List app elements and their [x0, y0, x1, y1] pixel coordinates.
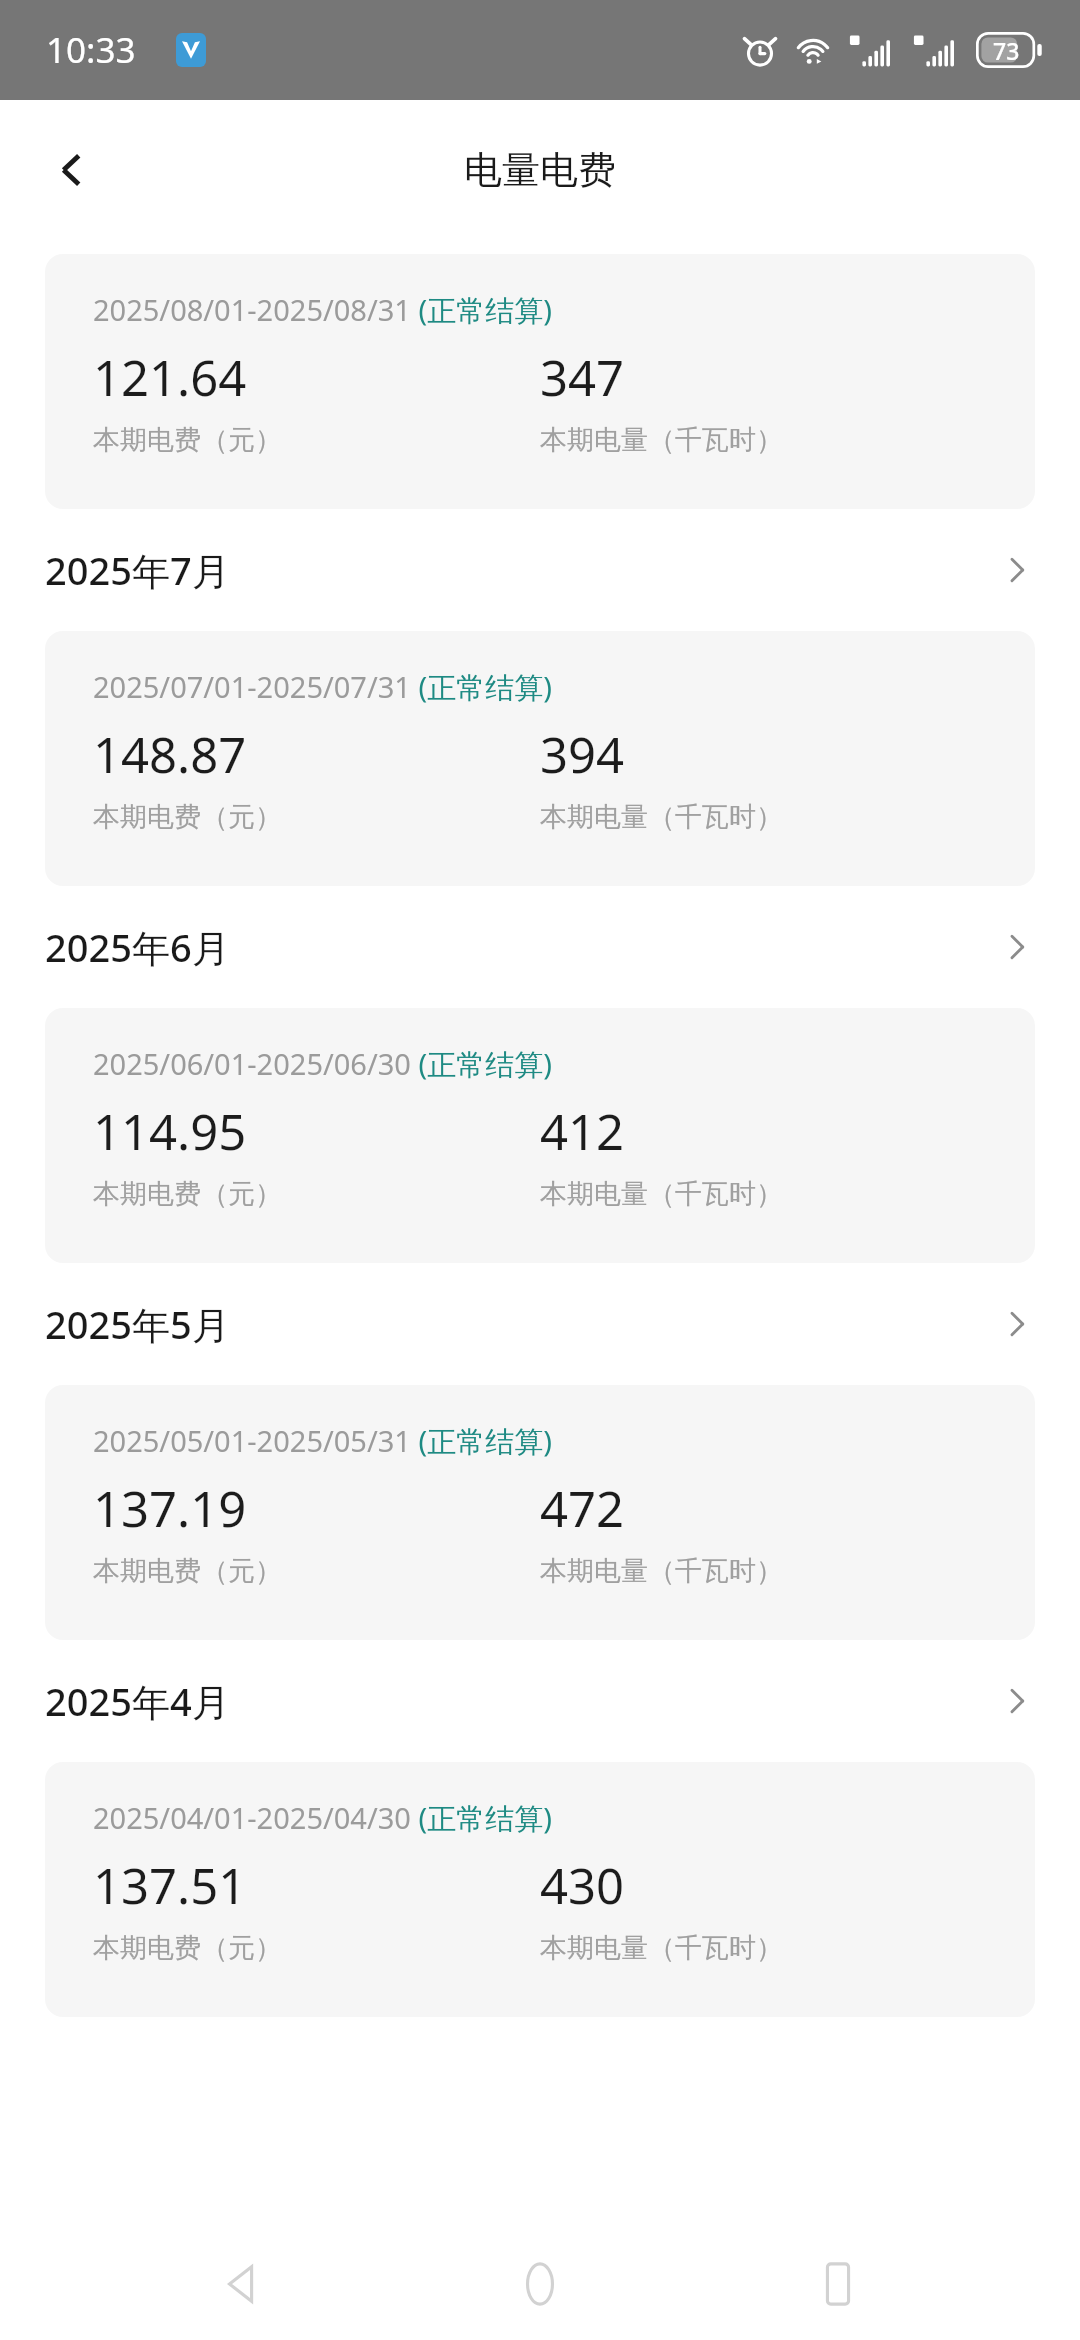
button[interactable]: 2025/05/01-2025/05/31 (正常结算) — [45, 1385, 1035, 1640]
button[interactable]: Back — [24, 122, 120, 218]
staticText: 10:33 — [46, 26, 136, 74]
staticText: 137.19 — [93, 1475, 247, 1542]
staticText: 电量电费 — [464, 146, 616, 194]
staticText: 本期电量（千瓦时） — [540, 1177, 783, 1211]
button[interactable]: 2025/08/01-2025/08/31 (正常结算) — [45, 254, 1035, 509]
staticText: 114.95 — [93, 1098, 247, 1165]
staticText: 本期电费（元） — [93, 1177, 282, 1211]
staticText: 本期电费（元） — [93, 1931, 282, 1965]
staticText: 2025/04/01-2025/04/30 (正常结算) — [93, 1798, 552, 1838]
staticText: 2025年4月 — [45, 1675, 230, 1727]
staticText: 394 — [540, 721, 625, 788]
staticText: 2025/06/01-2025/06/30 (正常结算) — [93, 1044, 552, 1084]
button[interactable]: 2025/06/01-2025/06/30 (正常结算) — [45, 1008, 1035, 1263]
staticText: 本期电量（千瓦时） — [540, 800, 783, 834]
button[interactable]: 2025年7月 — [0, 509, 1080, 631]
button[interactable]: 2025/04/01-2025/04/30 (正常结算) — [45, 1762, 1035, 2017]
staticText: 347 — [540, 344, 625, 411]
button[interactable]: 2025/07/01-2025/07/31 (正常结算) — [45, 631, 1035, 886]
staticText: 本期电费（元） — [93, 800, 282, 834]
staticText: 本期电费（元） — [93, 1554, 282, 1588]
staticText: 148.87 — [93, 721, 247, 788]
button[interactable]: 2025年4月 — [0, 1640, 1080, 1762]
staticText: 412 — [540, 1098, 625, 1165]
button[interactable]: Back — [186, 2228, 298, 2340]
staticText: 本期电量（千瓦时） — [540, 1931, 783, 1965]
staticText: 472 — [540, 1475, 625, 1542]
staticText: 2025/07/01-2025/07/31 (正常结算) — [93, 667, 552, 707]
button[interactable]: Recents — [782, 2228, 894, 2340]
staticText: 2025/08/01-2025/08/31 (正常结算) — [93, 290, 552, 330]
staticText: 430 — [540, 1852, 625, 1919]
staticText: 2025年6月 — [45, 921, 230, 973]
button[interactable]: 2025年5月 — [0, 1263, 1080, 1385]
staticText: 73 — [993, 35, 1020, 66]
staticText: 本期电量（千瓦时） — [540, 423, 783, 457]
staticText: 本期电费（元） — [93, 423, 282, 457]
staticText: 2025年5月 — [45, 1298, 230, 1350]
staticText: 137.51 — [93, 1852, 247, 1919]
staticText: 2025年7月 — [45, 544, 230, 596]
button[interactable]: Home — [484, 2228, 596, 2340]
staticText: 121.64 — [93, 344, 247, 411]
button[interactable]: 2025年6月 — [0, 886, 1080, 1008]
staticText: 2025/05/01-2025/05/31 (正常结算) — [93, 1421, 552, 1461]
staticText: 本期电量（千瓦时） — [540, 1554, 783, 1588]
